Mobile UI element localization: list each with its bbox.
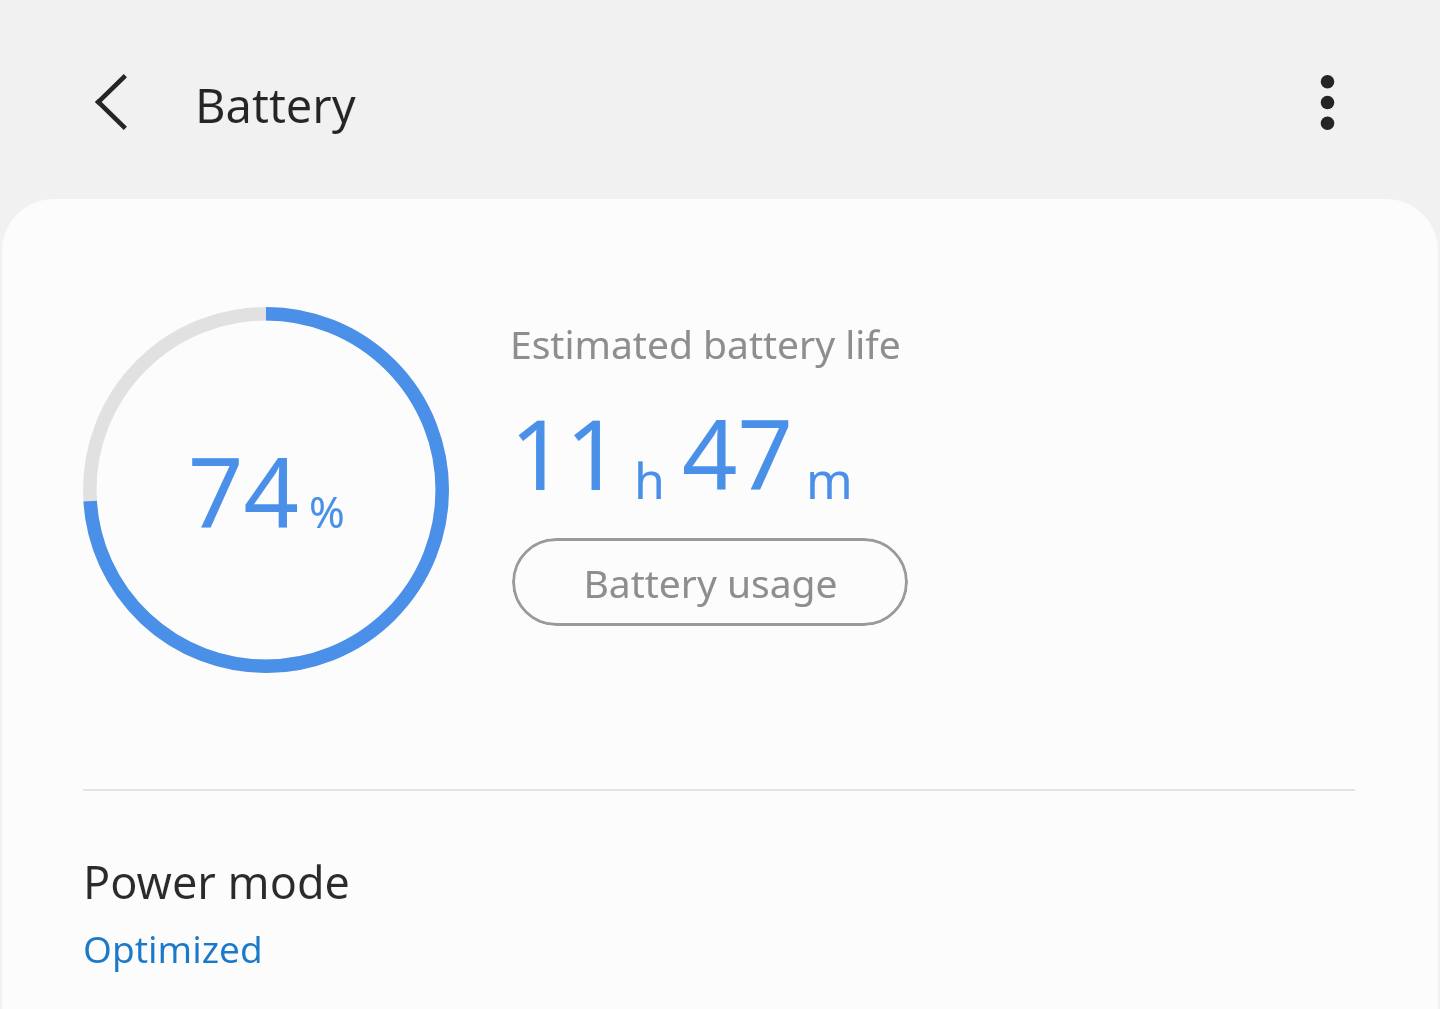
staticText: % [309,482,345,541]
staticText: Battery usage [583,556,838,609]
staticText: Battery [195,73,356,137]
staticText: 47 [682,386,793,518]
staticText: Power mode [83,851,350,912]
button[interactable]: Battery usage [512,538,908,626]
button[interactable]: Navigate up [72,63,150,141]
staticText: m [806,446,853,514]
button[interactable]: Power mode [2,829,1438,1005]
staticText: Estimated battery life [510,317,901,370]
staticText: 11 [510,386,621,518]
staticText: h [634,446,665,514]
staticText: Optimized [83,923,263,973]
staticText: 74 [188,424,299,556]
button[interactable]: More options [1288,63,1366,141]
